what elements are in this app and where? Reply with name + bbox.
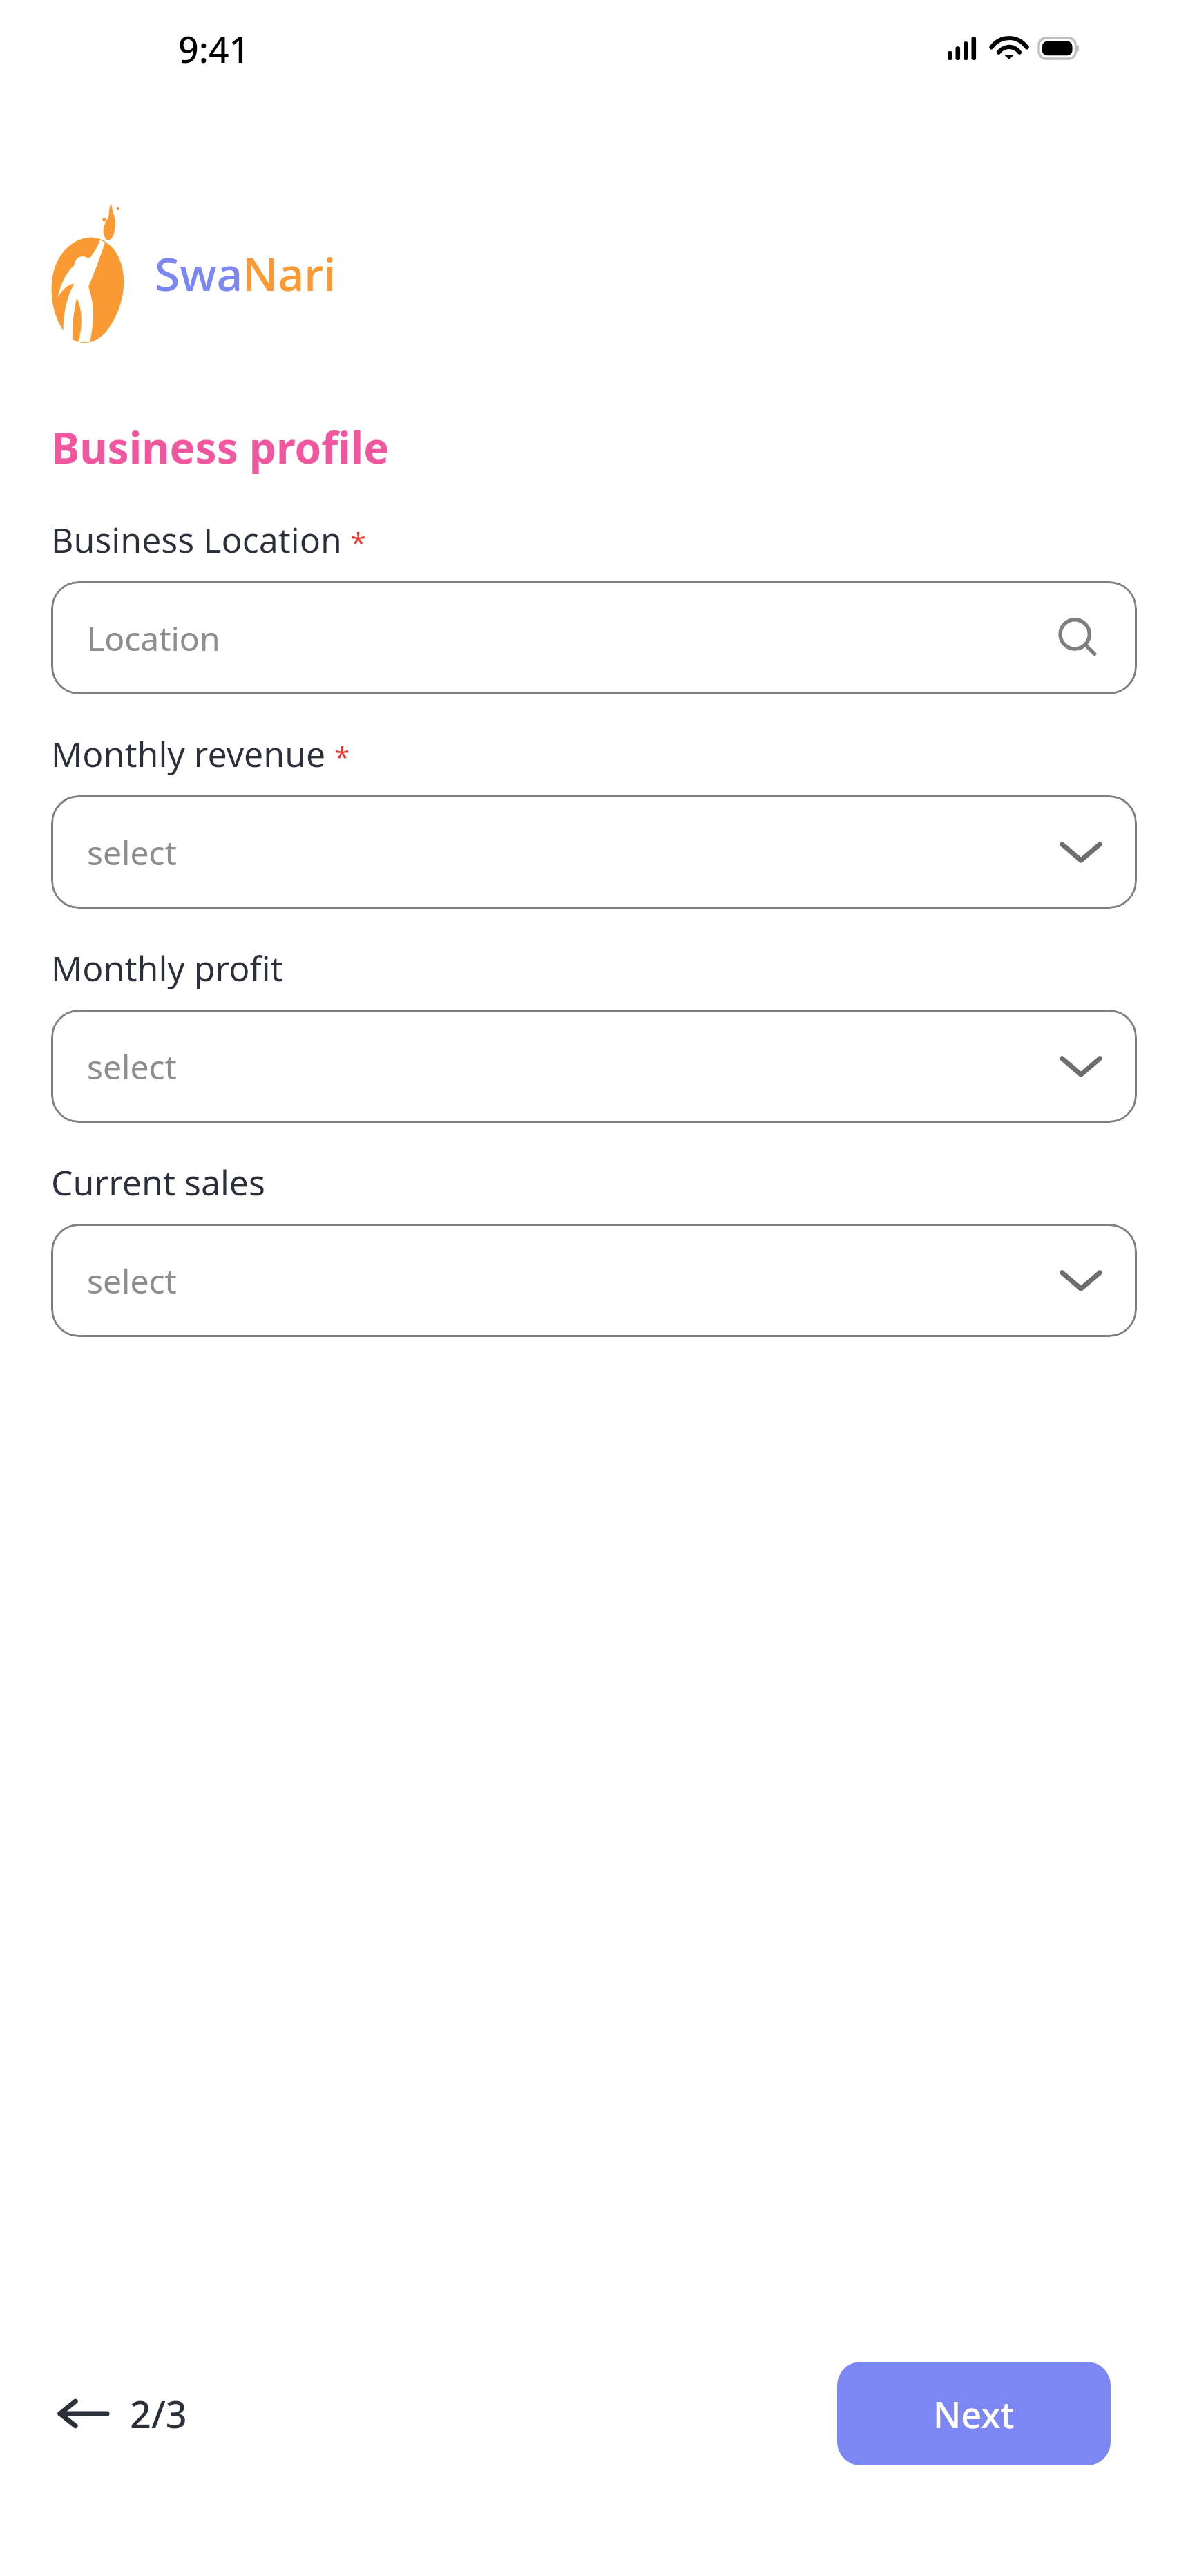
staticText: select — [87, 1258, 177, 1303]
staticText: Business profile — [51, 418, 390, 476]
staticText: Monthly profit — [51, 945, 283, 992]
staticText: Current sales — [51, 1159, 265, 1206]
button[interactable]: Back — [58, 2388, 187, 2439]
staticText: select — [87, 830, 177, 875]
button[interactable]: Next — [837, 2362, 1111, 2465]
button[interactable]: select — [51, 1010, 1137, 1123]
staticText: Location — [87, 616, 220, 661]
other: Back — [58, 2396, 109, 2432]
staticText: 9:41 — [178, 24, 250, 73]
staticText: Business Location * — [51, 516, 366, 563]
staticText: 2/3 — [130, 2388, 187, 2439]
other: Open dropdown — [1060, 1052, 1102, 1080]
button[interactable]: select — [51, 795, 1137, 909]
other: Open dropdown — [1060, 1267, 1102, 1294]
other: Search location — [1055, 616, 1100, 660]
staticText: Next — [933, 2389, 1015, 2438]
staticText: Monthly revenue * — [51, 730, 350, 777]
button[interactable]: Location — [51, 581, 1137, 694]
other: Open dropdown — [1060, 838, 1102, 866]
button[interactable]: select — [51, 1224, 1137, 1337]
staticText: SwaNari — [155, 242, 336, 304]
staticText: select — [87, 1044, 177, 1089]
